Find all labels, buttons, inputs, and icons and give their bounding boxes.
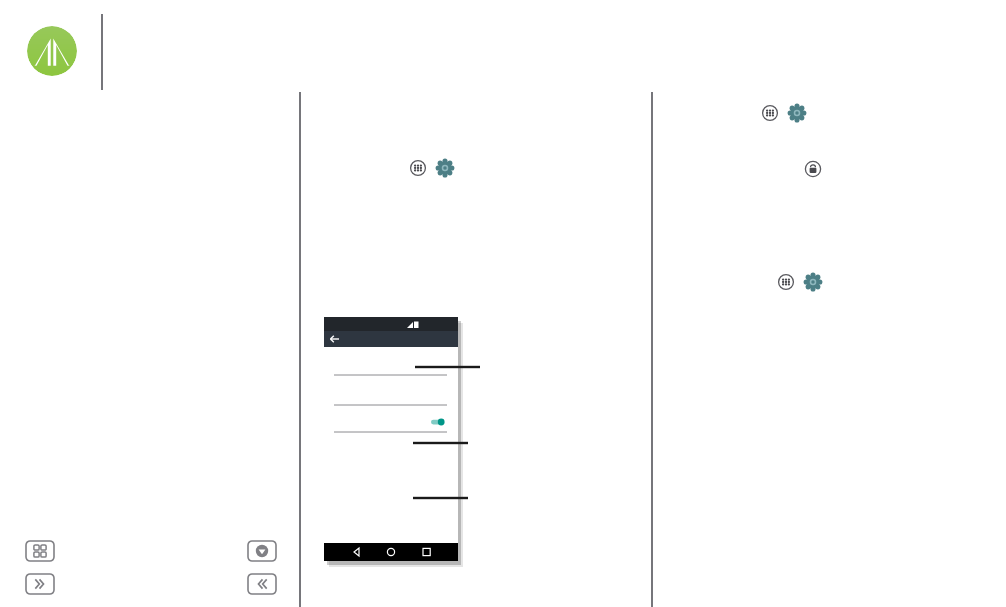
button[interactable]: Menu — [25, 540, 55, 562]
button[interactable]: Next — [247, 573, 277, 595]
button[interactable]: Back — [25, 573, 55, 595]
button[interactable]: Contents — [247, 540, 277, 562]
button[interactable]: Motorola — [27, 26, 77, 76]
